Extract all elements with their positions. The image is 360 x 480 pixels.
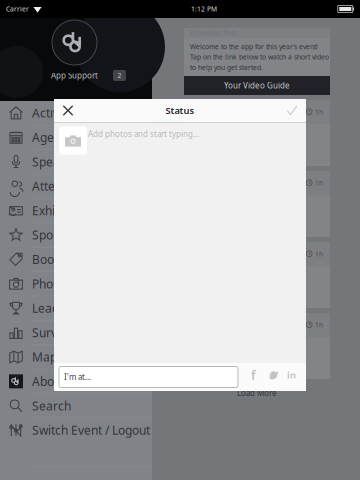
button[interactable]: Search: [0, 394, 152, 418]
staticText: Welcome to the app for this year's event…: [190, 42, 318, 51]
staticText: Status: [165, 104, 194, 117]
staticText: 1h: [315, 250, 323, 258]
staticText: About: [32, 373, 65, 389]
button[interactable]: React: [184, 358, 257, 379]
staticText: Load More: [237, 388, 277, 398]
staticText: Add photos and start typing...: [88, 129, 199, 139]
staticText: Leaderboard: [32, 300, 104, 316]
button[interactable]: Attendees: [0, 174, 152, 199]
button[interactable]: Map: [0, 345, 152, 369]
button[interactable]: Share on Facebook: [244, 365, 263, 385]
staticText: Tap on the link below to watch a short v…: [190, 53, 329, 61]
button[interactable]: Activity: [0, 101, 152, 125]
button[interactable]: Sponsors: [0, 223, 152, 247]
button[interactable]: Your Video Guide: [184, 76, 330, 95]
staticText: Photos: [32, 276, 70, 292]
staticText: App Support: [51, 70, 98, 81]
button[interactable]: Surveys: [0, 321, 152, 345]
staticText: Surveys: [32, 325, 76, 340]
button[interactable]: Agenda: [0, 125, 152, 150]
staticText: Your Video Guide: [224, 80, 290, 91]
staticText: Bookmarks: [32, 251, 95, 267]
button[interactable]: Exhibitors: [0, 199, 152, 223]
button[interactable]: Comment: [257, 287, 330, 308]
button[interactable]: Load More: [184, 384, 330, 402]
button[interactable]: Speakers: [0, 150, 152, 174]
button[interactable]: Close: [54, 99, 82, 122]
staticText: Promoted Post: [190, 29, 236, 37]
button[interactable]: Switch Event / Logout: [0, 418, 152, 443]
staticText: 1h: [315, 179, 323, 187]
button[interactable]: Photos: [0, 272, 152, 296]
staticText: Speakers: [32, 154, 84, 170]
button[interactable]: Share on LinkedIn: [282, 365, 301, 385]
button[interactable]: Leaderboard: [0, 296, 152, 321]
staticText: Map: [32, 349, 57, 365]
staticText: 1h: [315, 321, 323, 329]
staticText: I'm at...: [64, 372, 91, 382]
staticText: 1:12 PM: [191, 5, 217, 13]
button[interactable]: About: [0, 369, 152, 394]
button[interactable]: Bookmarks: [0, 247, 152, 272]
staticText: Sponsors: [32, 227, 84, 243]
button[interactable]: Comment: [257, 358, 330, 379]
staticText: 1h: [315, 108, 323, 116]
button[interactable]: Comment: [257, 216, 330, 237]
button[interactable]: Share on Twitter: [263, 365, 282, 385]
staticText: Exhibitors: [32, 203, 87, 218]
staticText: Carrier: [6, 5, 29, 13]
staticText: 2: [117, 71, 121, 80]
staticText: Activity: [32, 105, 72, 121]
staticText: f: [251, 367, 256, 383]
staticText: Switch Event / Logout: [32, 422, 150, 438]
staticText: Agenda: [32, 129, 75, 145]
button[interactable]: Post: [278, 99, 306, 122]
staticText: in: [287, 369, 296, 381]
button[interactable]: App Support: [184, 171, 330, 237]
button[interactable]: App Support: [184, 100, 330, 166]
button[interactable]: App Support: [184, 242, 330, 308]
button[interactable]: App Support: [184, 313, 330, 379]
staticText: Attendees: [32, 178, 89, 194]
staticText: to help you get started.: [190, 63, 263, 72]
button[interactable]: Comment: [257, 145, 330, 166]
button[interactable]: I'm at...: [59, 366, 238, 387]
staticText: Search: [32, 398, 71, 414]
